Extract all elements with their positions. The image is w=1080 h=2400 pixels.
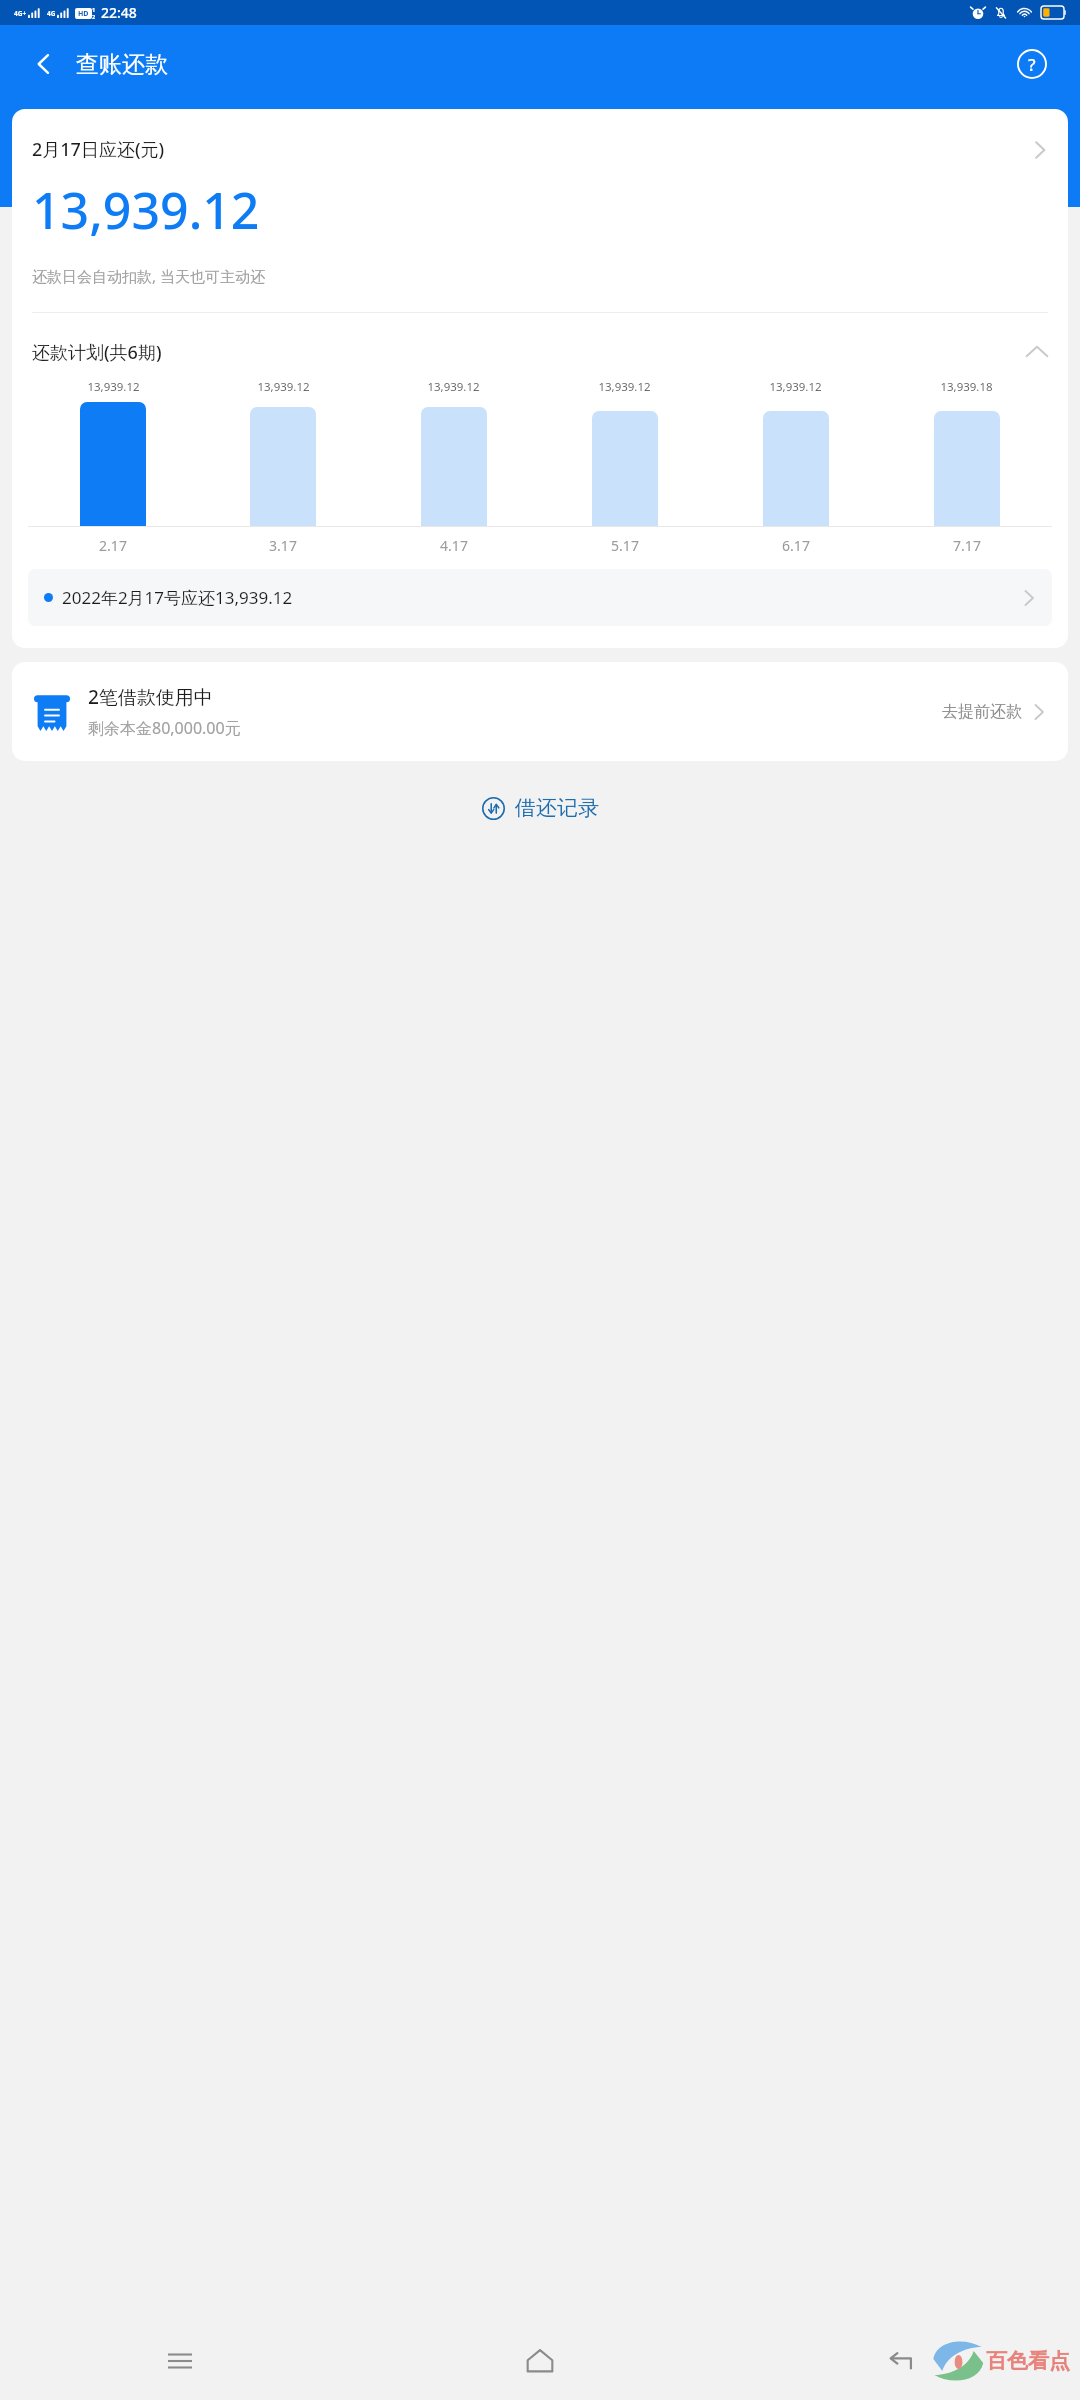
staticText: 13,939.12: [427, 379, 480, 395]
button[interactable]: [80, 402, 146, 526]
staticText: 2月17日应还(元): [32, 137, 165, 162]
staticText: 6.17: [782, 536, 810, 555]
staticText: 4G+: [14, 9, 27, 18]
staticText: 4.17: [440, 536, 468, 555]
button[interactable]: 2笔借款使用中: [12, 662, 1068, 761]
button[interactable]: 返回: [22, 42, 66, 86]
button[interactable]: 返回: [720, 2322, 1080, 2400]
button[interactable]: 最近任务: [0, 2322, 360, 2400]
button[interactable]: 借还记录: [472, 787, 609, 829]
staticText: 22:48: [101, 3, 137, 22]
button[interactable]: 还款计划(共6期): [12, 313, 1068, 371]
staticText: 13,939.12: [32, 176, 260, 244]
staticText: 去提前还款: [942, 702, 1022, 722]
staticText: 2022年2月17号应还13,939.12: [62, 586, 293, 609]
staticText: 3.17: [269, 536, 297, 555]
staticText: 1: [92, 6, 96, 13]
button[interactable]: 2月17日应还(元): [12, 109, 1068, 166]
staticText: 5.17: [611, 536, 639, 555]
staticText: 13,939.12: [257, 379, 310, 395]
staticText: 7.17: [953, 536, 981, 555]
staticText: 13,939.12: [87, 379, 140, 395]
staticText: 借还记录: [515, 795, 599, 821]
button[interactable]: 主页: [360, 2322, 720, 2400]
button[interactable]: 帮助: [1010, 42, 1054, 86]
staticText: 还款日会自动扣款, 当天也可主动还: [32, 266, 265, 286]
other: 收起: [1024, 339, 1050, 365]
staticText: 13,939.12: [769, 379, 822, 395]
staticText: 查账还款: [76, 50, 168, 79]
staticText: 4G: [47, 9, 56, 18]
staticText: 13,939.18: [940, 379, 993, 395]
staticText: 13,939.12: [598, 379, 651, 395]
staticText: 2.17: [99, 536, 127, 555]
staticText: ?: [1028, 53, 1036, 76]
staticText: 2笔借款使用中: [88, 684, 213, 710]
button[interactable]: 2022年2月17号应还13,939.12: [28, 569, 1052, 626]
staticText: 百色看点: [986, 2348, 1070, 2374]
staticText: 剩余本金80,000.00元: [88, 717, 241, 739]
staticText: 还款计划(共6期): [32, 340, 162, 365]
staticText: 2: [92, 13, 96, 20]
staticText: HD: [78, 9, 89, 19]
